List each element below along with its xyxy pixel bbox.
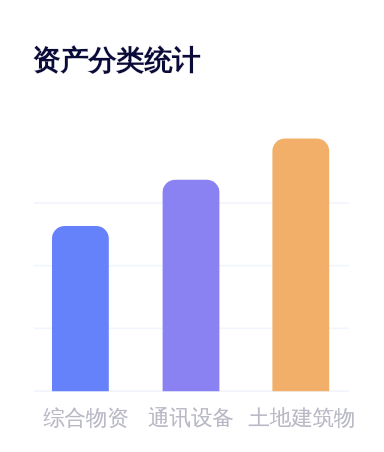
staticText: 通讯设备	[133, 404, 249, 431]
button[interactable]: 综合物资	[52, 226, 109, 391]
staticText: 土地建筑物	[244, 404, 360, 431]
button[interactable]: 土地建筑物	[244, 401, 360, 431]
button[interactable]: 通讯设备	[133, 401, 249, 431]
staticText: 资产分类统计	[32, 43, 200, 78]
button[interactable]: 综合物资	[28, 401, 144, 431]
button[interactable]: 通讯设备	[163, 180, 220, 391]
staticText: 综合物资	[28, 404, 144, 431]
button[interactable]: 土地建筑物	[272, 139, 329, 392]
